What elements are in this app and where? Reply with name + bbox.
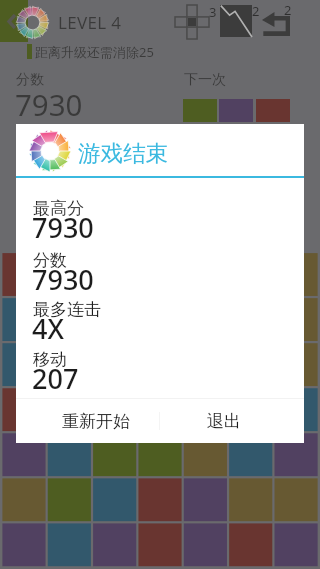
staticText: 7930 <box>32 209 94 246</box>
staticText: 分数 <box>16 71 44 89</box>
staticText: 下一次 <box>184 71 226 89</box>
staticText: 移动 <box>33 349 67 370</box>
button[interactable]: Undo <box>262 0 304 42</box>
button[interactable]: Back <box>0 0 24 42</box>
staticText: 最高分 <box>33 198 84 219</box>
staticText: 4X <box>32 310 64 347</box>
button[interactable]: Cross blast power-up <box>172 0 214 42</box>
button[interactable]: Line blast power-up <box>220 0 260 42</box>
staticText: 2 <box>284 1 292 19</box>
staticText: 7930 <box>32 261 94 298</box>
staticText: 207 <box>32 360 79 397</box>
staticText: 分数 <box>33 250 67 271</box>
staticText: 重新开始 <box>62 411 130 432</box>
staticText: 2 <box>252 2 260 20</box>
staticText: 游戏结束 <box>78 139 168 167</box>
staticText: LEVEL 4 <box>58 11 122 34</box>
staticText: 7930 <box>15 84 83 124</box>
button[interactable]: 重新开始 <box>33 399 159 443</box>
staticText: 距离升级还需消除25 <box>35 43 154 59</box>
staticText: 3 <box>209 3 217 21</box>
button[interactable]: 退出 <box>160 399 287 443</box>
staticText: 退出 <box>207 411 241 432</box>
staticText: 最多连击 <box>33 299 101 320</box>
